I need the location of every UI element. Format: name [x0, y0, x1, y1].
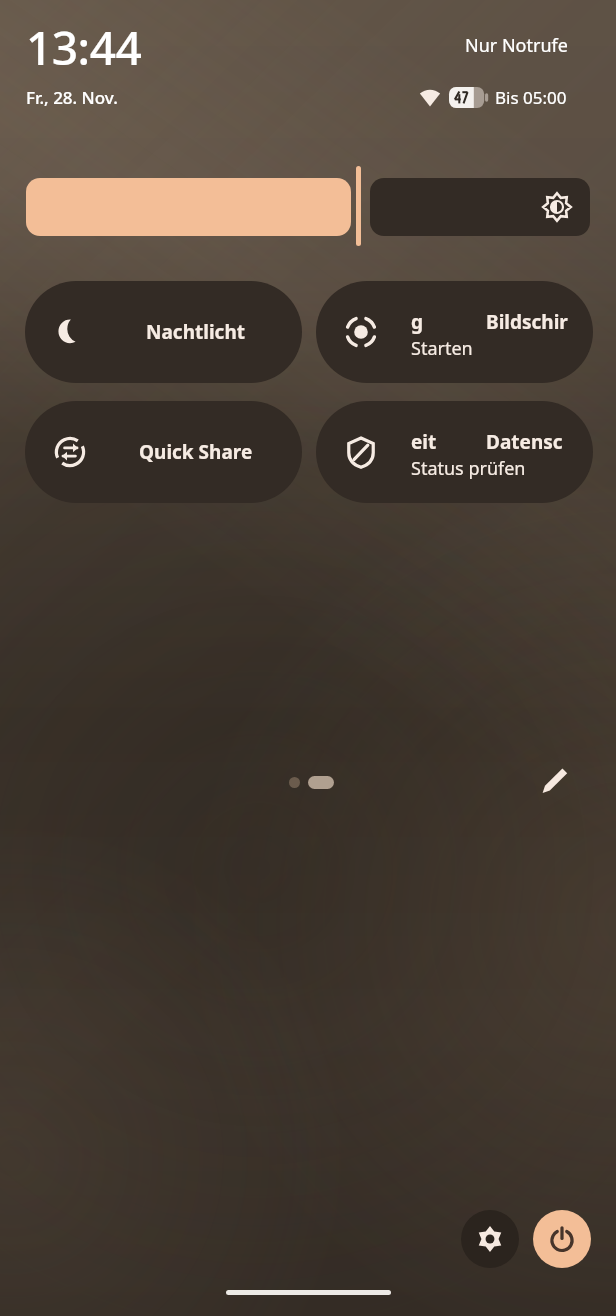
staticText: eit [411, 429, 437, 455]
staticText: Quick Share [139, 439, 253, 465]
button[interactable]: Ein/Aus [533, 1210, 591, 1268]
staticText: Datensc [486, 429, 563, 455]
button[interactable]: Einstellungen [461, 1210, 519, 1268]
button[interactable]: Datensc [316, 401, 593, 503]
staticText: Nur Notrufe [465, 33, 568, 58]
button[interactable]: Quick Share [25, 401, 302, 503]
button[interactable]: Bearbeiten [530, 757, 578, 805]
staticText: g [411, 309, 424, 335]
button[interactable]: Adaptive Helligkeit [370, 178, 590, 236]
staticText: Bildschir [486, 309, 568, 335]
staticText: Starten [411, 336, 473, 361]
button[interactable]: Helligkeit [26, 178, 351, 236]
staticText: Status prüfen [411, 456, 526, 481]
button[interactable]: Nachtlicht [25, 281, 302, 383]
staticText: Bis 05:00 [495, 86, 567, 109]
staticText: 13:44 [26, 16, 142, 79]
button[interactable]: Bildschir [316, 281, 593, 383]
staticText: Fr., 28. Nov. [26, 86, 118, 109]
staticText: Nachtlicht [146, 319, 245, 345]
